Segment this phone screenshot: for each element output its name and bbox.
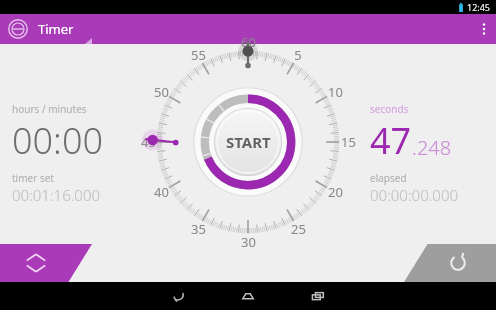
button[interactable]: Second handle xyxy=(144,129,180,151)
button[interactable]: Back xyxy=(143,282,213,310)
button[interactable]: Minute handle xyxy=(235,41,261,75)
staticText: 47 xyxy=(370,116,412,165)
staticText: 45 xyxy=(141,133,156,151)
staticText: 50 xyxy=(154,83,169,101)
staticText: 30 xyxy=(241,233,256,251)
button[interactable]: More options xyxy=(472,14,496,44)
staticText: seconds xyxy=(370,102,409,116)
staticText: timer set xyxy=(12,171,54,185)
button[interactable]: hours / minutes xyxy=(12,102,142,205)
staticText: 55 xyxy=(191,46,206,64)
button[interactable]: START xyxy=(194,88,302,196)
staticText: .248 xyxy=(412,134,452,161)
staticText: 35 xyxy=(191,220,206,238)
staticText: elapsed xyxy=(370,171,407,185)
staticText: 00:01:16.000 xyxy=(12,185,101,205)
button[interactable]: Home xyxy=(213,282,283,310)
staticText: 00:00 xyxy=(12,116,104,165)
staticText: 15 xyxy=(341,133,356,151)
staticText: 40 xyxy=(154,183,169,201)
staticText: 5 xyxy=(294,46,302,64)
staticText: hours / minutes xyxy=(12,102,87,116)
staticText: 25 xyxy=(291,220,306,238)
staticText: START xyxy=(226,132,271,152)
button[interactable]: seconds xyxy=(370,102,490,205)
staticText: 12:45 xyxy=(467,1,491,13)
staticText: 10 xyxy=(328,83,343,101)
button[interactable]: App icon xyxy=(8,19,28,39)
button[interactable]: Reset xyxy=(404,244,496,282)
staticText: 00:00:00.000 xyxy=(370,185,459,205)
button[interactable]: Recents xyxy=(283,282,353,310)
button[interactable]: Adjust timer xyxy=(0,244,92,282)
staticText: 20 xyxy=(328,183,343,201)
staticText: 60 xyxy=(241,33,256,51)
staticText: Timer xyxy=(38,20,74,38)
